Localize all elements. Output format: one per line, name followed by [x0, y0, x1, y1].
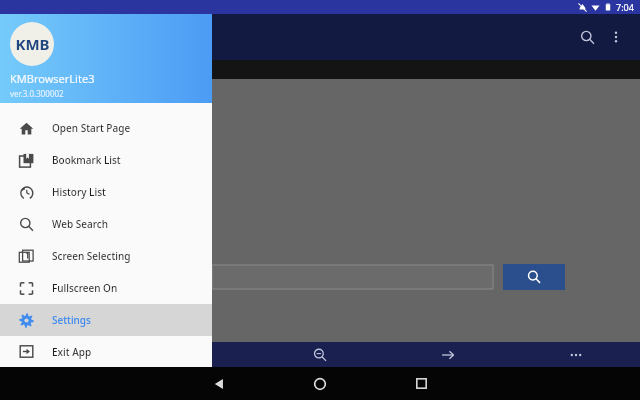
button[interactable]: Web Search — [0, 208, 212, 240]
button[interactable]: Forward — [384, 342, 512, 367]
staticText: KMBrowserLite3 — [10, 71, 95, 86]
button[interactable]: Zoom out — [256, 342, 384, 367]
button[interactable]: Search — [503, 264, 565, 290]
staticText: Settings — [52, 313, 91, 327]
staticText: KMB — [15, 34, 50, 54]
staticText: Fullscreen On — [52, 281, 118, 295]
button[interactable]: Settings — [0, 304, 212, 336]
button[interactable]: Bookmark List — [0, 144, 212, 176]
button[interactable]: Screen Selecting — [0, 240, 212, 272]
staticText: History List — [52, 185, 106, 199]
button[interactable]: More options — [602, 23, 630, 51]
button[interactable]: Back — [196, 367, 242, 400]
button[interactable]: Recents — [398, 367, 444, 400]
staticText: ver.3.0.300002 — [10, 88, 64, 99]
staticText: Bookmark List — [52, 153, 121, 167]
staticText: Web Search — [52, 217, 108, 231]
button[interactable]: Zoom in — [128, 342, 256, 367]
button[interactable]: History List — [0, 176, 212, 208]
button[interactable] — [212, 265, 493, 289]
button[interactable]: Exit App — [0, 336, 212, 367]
staticText: 7:04 — [616, 1, 634, 13]
staticText: Exit App — [52, 345, 92, 359]
button[interactable]: More — [512, 342, 640, 367]
button[interactable]: Home — [297, 367, 343, 400]
staticText: Screen Selecting — [52, 249, 131, 263]
button[interactable]: Open Start Page — [0, 112, 212, 144]
button[interactable]: Search — [572, 22, 602, 52]
staticText: Open Start Page — [52, 121, 131, 135]
button[interactable]: Tabs — [0, 342, 128, 367]
button[interactable]: Fullscreen On — [0, 272, 212, 304]
